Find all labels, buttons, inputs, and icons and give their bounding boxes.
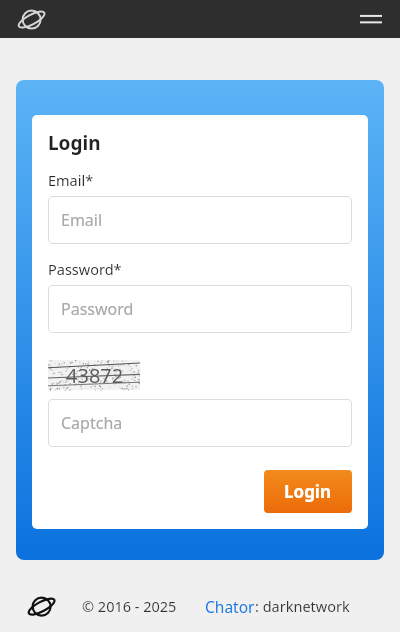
- button[interactable]: Menu: [356, 4, 386, 34]
- staticText: Password: [61, 298, 134, 320]
- staticText: : darknetwork: [255, 596, 350, 616]
- button[interactable]: Home: [16, 4, 46, 34]
- button[interactable]: Chator: [205, 596, 255, 617]
- button[interactable]: Home: [26, 591, 56, 621]
- staticText: Captcha: [61, 412, 123, 434]
- button[interactable]: Login: [264, 470, 352, 513]
- staticText: Email*: [48, 170, 94, 190]
- staticText: Password*: [48, 259, 122, 279]
- staticText: © 2016 - 2025: [82, 596, 177, 616]
- button[interactable]: Captcha: [48, 399, 352, 447]
- button[interactable]: Password: [48, 285, 352, 333]
- staticText: Email: [61, 209, 103, 231]
- staticText: 43872: [66, 362, 124, 389]
- staticText: Login: [284, 480, 332, 503]
- button[interactable]: Email: [48, 196, 352, 244]
- staticText: Login: [48, 130, 101, 156]
- staticText: Chator: [205, 596, 255, 617]
